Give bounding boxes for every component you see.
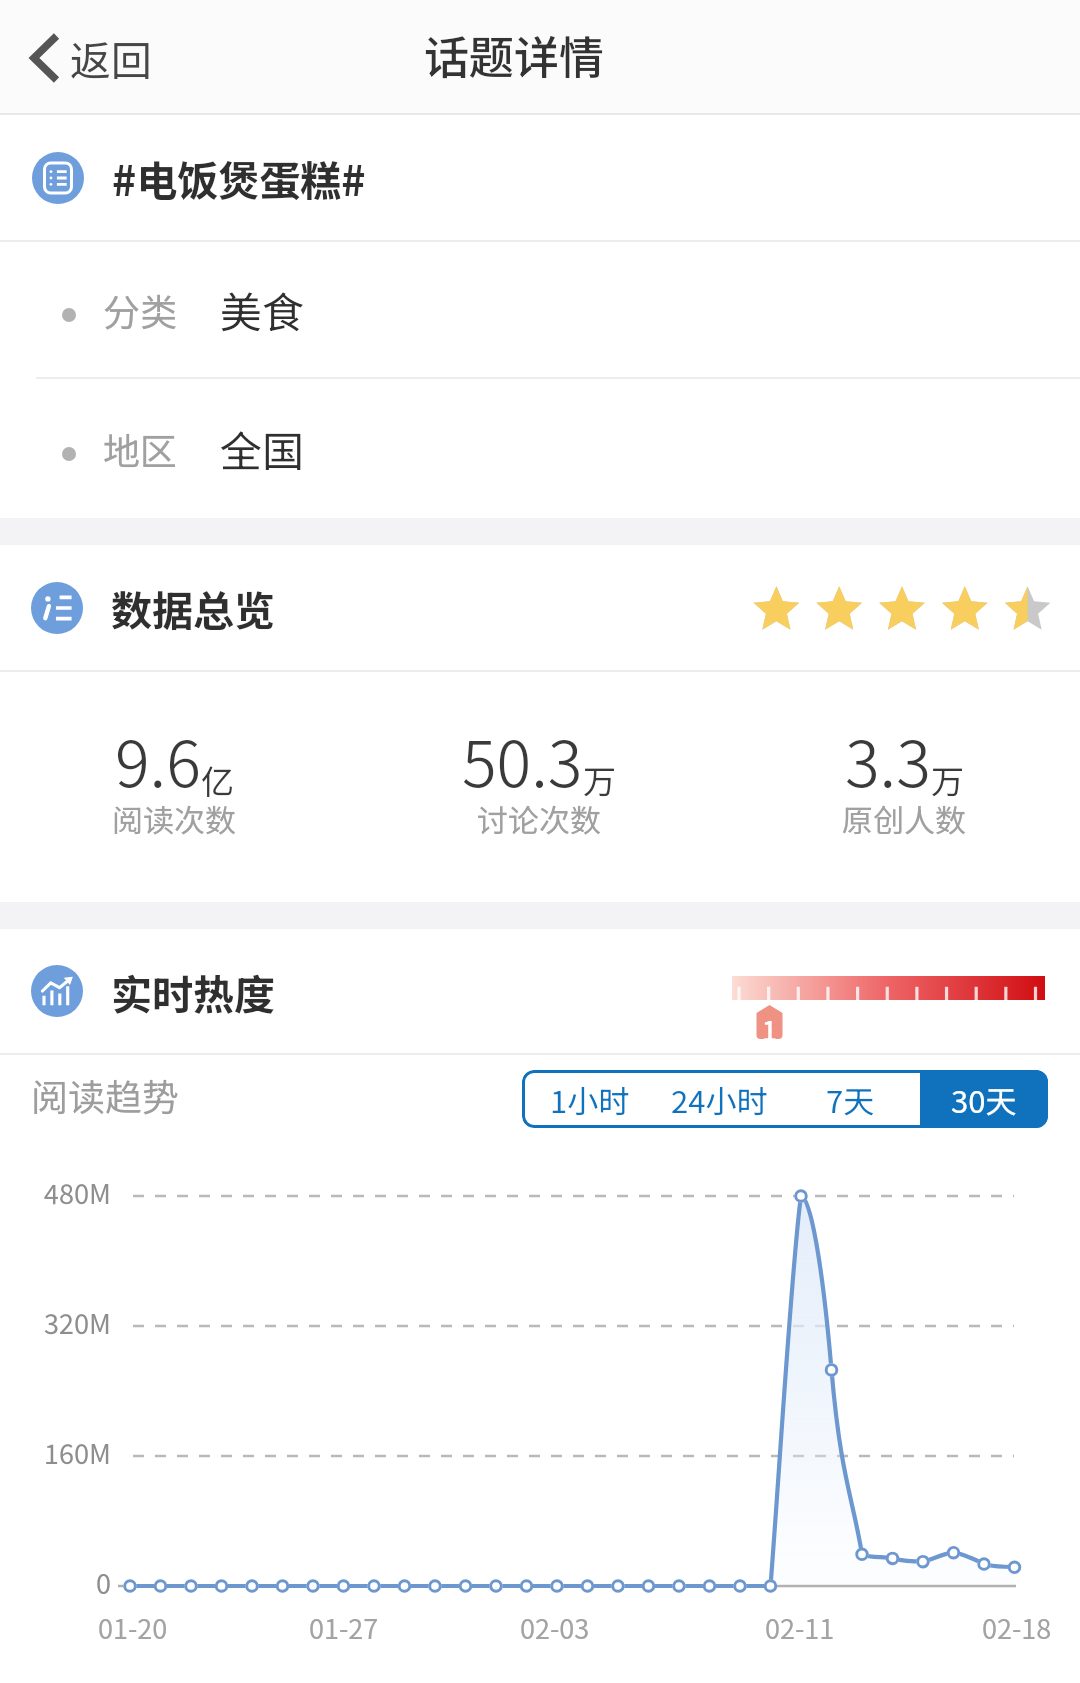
staticText: 01-27 (309, 1608, 379, 1647)
staticText: 万 (583, 756, 616, 804)
staticText: 30天 (951, 1077, 1017, 1122)
staticText: 地区 (103, 422, 177, 476)
staticText: 原创人数 (842, 796, 966, 841)
staticText: 9.6 (115, 713, 201, 806)
staticText: 02-03 (520, 1608, 590, 1647)
button[interactable]: 50.3 (359, 672, 719, 902)
staticText: 话题详情 (424, 22, 605, 87)
staticText: 02-11 (765, 1608, 835, 1647)
staticText: 亿 (201, 756, 234, 804)
staticText: 160M (44, 1433, 111, 1472)
staticText: 02-18 (982, 1608, 1052, 1647)
button[interactable]: 返回 (0, 10, 176, 105)
staticText: 实时热度 (111, 962, 275, 1021)
button[interactable]: #电饭煲蛋糕# (0, 115, 1080, 240)
staticText: 01-20 (98, 1608, 168, 1647)
staticText: 480M (44, 1173, 111, 1212)
staticText: 讨论次数 (477, 796, 601, 841)
button[interactable]: 3.3 (724, 672, 1080, 902)
button[interactable]: 7天 (781, 1070, 920, 1128)
button[interactable]: 9.6 (0, 672, 354, 902)
staticText: 320M (44, 1303, 111, 1342)
staticText: 分类 (103, 283, 177, 337)
button[interactable]: 30天 (920, 1070, 1048, 1128)
staticText: 阅读趋势 (31, 1068, 179, 1122)
staticText: 50.3 (462, 713, 583, 806)
staticText: 阅读次数 (112, 796, 236, 841)
button[interactable]: 分类 (0, 242, 1080, 377)
button[interactable]: 地区 (0, 379, 1080, 518)
staticText: 美食 (220, 279, 305, 340)
staticText: 万 (931, 756, 964, 804)
staticText: 7天 (826, 1077, 875, 1122)
staticText: 24小时 (671, 1077, 768, 1122)
staticText: 0 (96, 1563, 111, 1602)
staticText: 1 (762, 1011, 777, 1041)
button[interactable]: 24小时 (657, 1070, 781, 1128)
staticText: #电饭煲蛋糕# (112, 148, 366, 207)
staticText: 3.3 (845, 713, 931, 806)
staticText: 返回 (70, 28, 152, 87)
staticText: 数据总览 (111, 578, 275, 637)
staticText: 全国 (220, 418, 305, 479)
staticText: 1小时 (550, 1077, 630, 1122)
button[interactable]: 1小时 (522, 1070, 657, 1128)
